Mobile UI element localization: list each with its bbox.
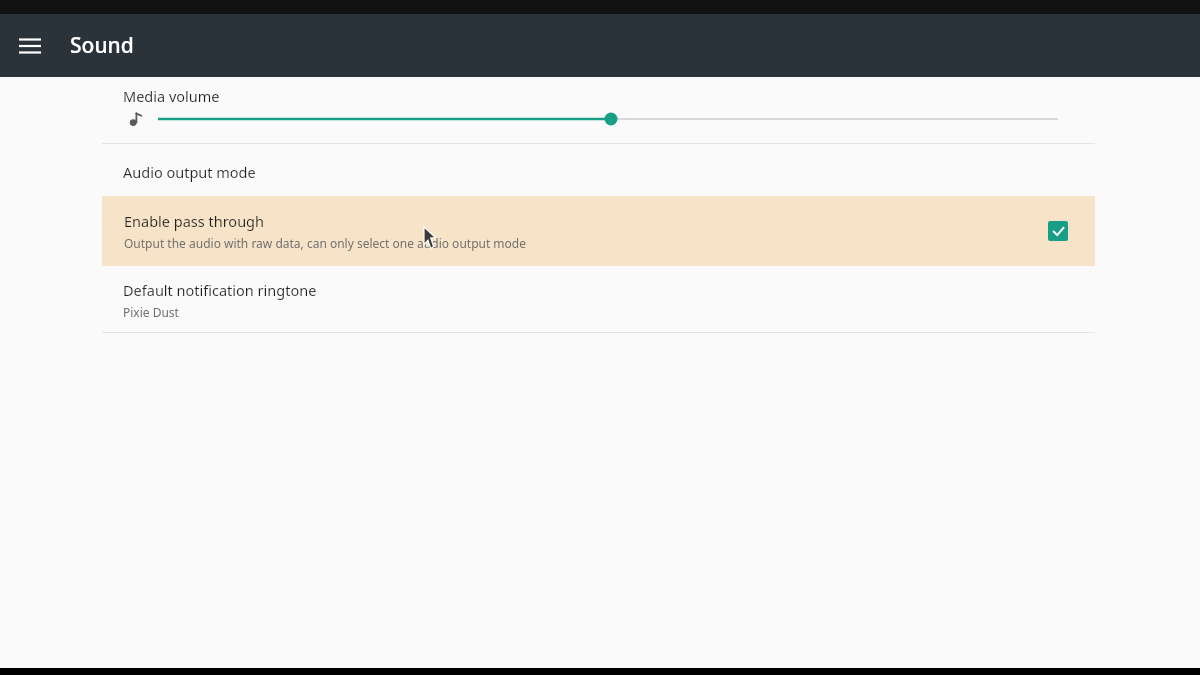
other: Media volume	[126, 110, 144, 128]
staticText: Sound	[70, 31, 134, 60]
button[interactable]: Open navigation menu	[10, 26, 50, 66]
staticText: Enable pass through	[124, 211, 264, 231]
staticText: Pixie Dust	[123, 304, 179, 320]
staticText: Media volume	[123, 86, 220, 106]
button[interactable]: Media volume	[0, 77, 1200, 143]
button[interactable]: Audio output mode	[0, 144, 1200, 196]
staticText: Default notification ringtone	[123, 280, 317, 300]
staticText: Audio output mode	[123, 162, 256, 182]
staticText: Output the audio with raw data, can only…	[124, 235, 527, 251]
button[interactable]: Enable pass through checkbox, checked	[1048, 221, 1068, 241]
button[interactable]: Enable pass through	[102, 196, 1095, 266]
button[interactable]: Default notification ringtone	[0, 266, 1200, 332]
